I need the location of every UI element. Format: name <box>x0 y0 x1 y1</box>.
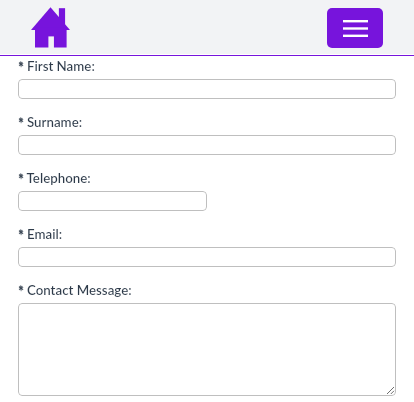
staticText: * Contact Message: <box>18 282 132 298</box>
button[interactable] <box>18 79 396 99</box>
button[interactable]: Home <box>31 7 70 48</box>
staticText: * <box>18 283 25 300</box>
button[interactable] <box>18 135 396 155</box>
staticText: * <box>18 59 25 76</box>
staticText: * Telephone: <box>18 170 91 186</box>
staticText: * Surname: <box>18 114 83 130</box>
staticText: * <box>18 171 25 188</box>
button[interactable]: Menu <box>327 8 383 48</box>
staticText: * <box>18 115 25 132</box>
button[interactable] <box>18 191 207 211</box>
button[interactable] <box>18 247 396 267</box>
staticText: * <box>18 227 25 244</box>
staticText: * First Name: <box>18 58 95 74</box>
staticText: * Email: <box>18 226 63 242</box>
button[interactable] <box>18 303 396 396</box>
